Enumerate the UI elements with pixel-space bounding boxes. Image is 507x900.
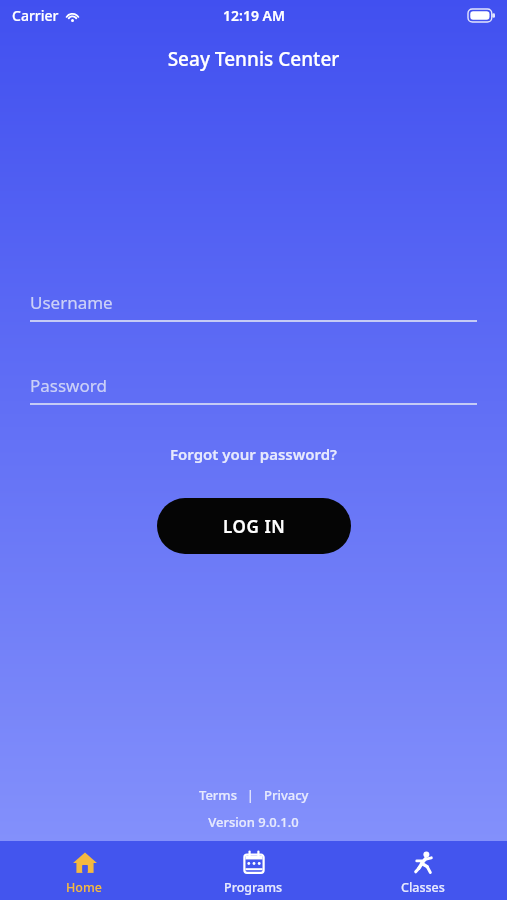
staticText: Terms [199,786,237,804]
button[interactable]: Password [30,374,477,405]
button[interactable]: LOG IN [157,498,351,554]
button[interactable]: Forgot your password? [162,440,345,468]
staticText: Classes [401,879,445,896]
button[interactable]: Classes [338,841,507,900]
staticText: | [240,786,261,804]
staticText: LOG IN [223,515,286,538]
staticText: Version 9.0.1.0 [0,813,507,831]
staticText: Carrier [12,6,59,25]
button[interactable]: Programs [169,841,338,900]
staticText: Home [66,879,103,896]
staticText: Username [30,291,113,314]
staticText: Password [30,374,107,397]
staticText: Seay Tennis Center [0,46,507,72]
button[interactable]: Terms [196,786,240,804]
staticText: Forgot your password? [170,444,337,464]
staticText: Programs [224,879,283,896]
button[interactable]: Home [0,841,169,900]
staticText: Privacy [264,786,309,804]
button[interactable]: Privacy [261,786,312,804]
staticText: 12:19 AM [223,6,285,25]
button[interactable]: Username [30,291,477,322]
